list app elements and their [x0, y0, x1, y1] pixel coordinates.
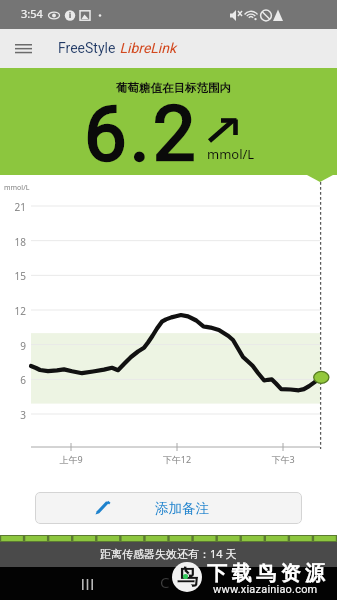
staticText: 3: [4, 408, 26, 422]
staticText: 12: [4, 304, 26, 318]
staticText: www.xiazainiao.com: [213, 583, 318, 596]
staticText: 添加备注: [155, 500, 209, 517]
staticText: LibreLink: [116, 40, 177, 56]
button[interactable]: Menu: [3, 29, 43, 68]
button[interactable]: Recents: [74, 571, 100, 597]
staticText: 下午3: [253, 453, 313, 465]
staticText: C: [160, 572, 170, 592]
staticText: 6: [4, 373, 26, 387]
staticText: 21: [4, 200, 26, 214]
staticText: FreeStyle: [58, 40, 116, 56]
staticText: 下载鸟资源: [207, 561, 330, 586]
staticText: 15: [4, 269, 26, 283]
staticText: 鸟: [177, 564, 198, 590]
staticText: mmol/L: [4, 183, 30, 193]
staticText: 9: [4, 339, 26, 353]
staticText: 上午9: [41, 453, 101, 465]
staticText: 3:54: [21, 6, 43, 21]
staticText: 6.2: [84, 89, 199, 178]
staticText: mmol/L: [207, 145, 255, 163]
button[interactable]: 添加备注: [35, 492, 302, 524]
staticText: 距离传感器失效还有：14 天: [100, 546, 237, 561]
staticText: 18: [4, 235, 26, 249]
staticText: 葡萄糖值在目标范围内: [5, 81, 337, 95]
staticText: 下午12: [147, 453, 207, 465]
